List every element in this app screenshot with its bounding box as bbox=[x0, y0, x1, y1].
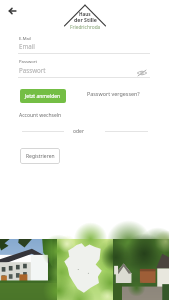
button[interactable]: Passwort vergessen? bbox=[87, 90, 140, 97]
staticText: Haus bbox=[79, 11, 91, 17]
staticText: Friedrichroda bbox=[70, 24, 101, 31]
staticText: Passwort vergessen? bbox=[87, 90, 140, 97]
staticText: oder bbox=[73, 128, 84, 135]
button[interactable]: Jetzt anmelden bbox=[20, 89, 66, 103]
staticText: Registrieren bbox=[26, 153, 55, 160]
button[interactable]: Show password bbox=[136, 67, 148, 79]
staticText: Account wechseln bbox=[19, 112, 62, 119]
staticText: Jetzt anmelden bbox=[25, 93, 61, 100]
staticText: Passwort bbox=[19, 59, 37, 65]
button[interactable]: Registrieren bbox=[20, 148, 60, 164]
button[interactable]: Back bbox=[5, 3, 21, 19]
staticText: Passwort bbox=[19, 66, 46, 74]
button[interactable]: Account wechseln bbox=[19, 112, 62, 119]
staticText: der Stille bbox=[74, 16, 97, 23]
staticText: E-Mail bbox=[19, 36, 31, 42]
staticText: Email bbox=[19, 42, 35, 50]
